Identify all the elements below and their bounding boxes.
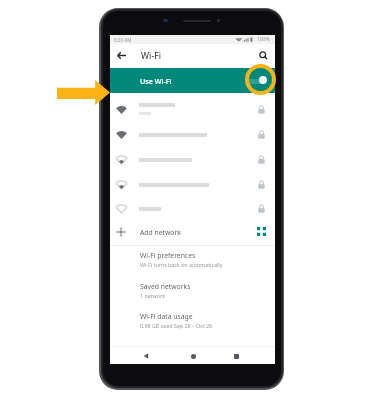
- button[interactable]: Wi-Fi preferences: [110, 246, 275, 274]
- staticText: 6:20 AM: [114, 37, 132, 43]
- button[interactable]: Back: [124, 348, 168, 364]
- button[interactable]: Home: [171, 348, 215, 364]
- button[interactable]: Wi-Fi data usage: [110, 307, 275, 335]
- staticText: Wi-Fi data usage: [140, 312, 193, 321]
- button[interactable]: Add network with QR code: [253, 223, 269, 239]
- button[interactable]: Recent apps: [214, 348, 258, 364]
- staticText: 100%: [257, 36, 270, 43]
- button[interactable]: Back: [113, 47, 130, 64]
- staticText: 0.98 GB used Sep 28 – Oct 26: [140, 322, 213, 329]
- staticText: 1 network: [140, 292, 165, 299]
- button[interactable]: Add network: [110, 220, 275, 244]
- staticText: Wi-Fi preferences: [140, 251, 196, 260]
- button[interactable]: Use Wi-Fi: [110, 68, 275, 93]
- button[interactable]: Search: [255, 47, 272, 64]
- button[interactable]: Saved networks: [110, 277, 275, 305]
- button[interactable]: [110, 122, 275, 147]
- staticText: Use Wi-Fi: [140, 76, 172, 86]
- staticText: Wi-Fi: [141, 50, 162, 62]
- button[interactable]: [110, 147, 275, 172]
- button[interactable]: [110, 196, 275, 221]
- button[interactable]: Use Wi-Fi: [243, 74, 269, 87]
- button[interactable]: [110, 97, 275, 122]
- staticText: Wi-Fi turns back on automatically: [140, 261, 223, 268]
- button[interactable]: [110, 172, 275, 197]
- staticText: Add network: [140, 228, 181, 237]
- staticText: Saved networks: [140, 282, 191, 291]
